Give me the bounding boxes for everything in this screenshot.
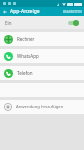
button[interactable]: Back [0,7,9,16]
button[interactable]: Telefon [0,66,84,80]
button[interactable]: Ein [0,16,84,29]
staticText: Telefon [17,70,33,76]
button[interactable]: Rechner [0,32,84,46]
button[interactable]: Anwendung hinzufügen [0,100,84,114]
staticText: Anwendung hinzufügen [16,104,64,110]
button[interactable]: BEARBEITEN [63,10,84,14]
staticText: WhatsApp [17,53,39,59]
staticText: Ein [5,20,12,26]
staticText: Rechner [17,36,35,42]
staticText: App-Anzeige [10,8,40,15]
button[interactable]: WhatsApp [0,49,84,63]
